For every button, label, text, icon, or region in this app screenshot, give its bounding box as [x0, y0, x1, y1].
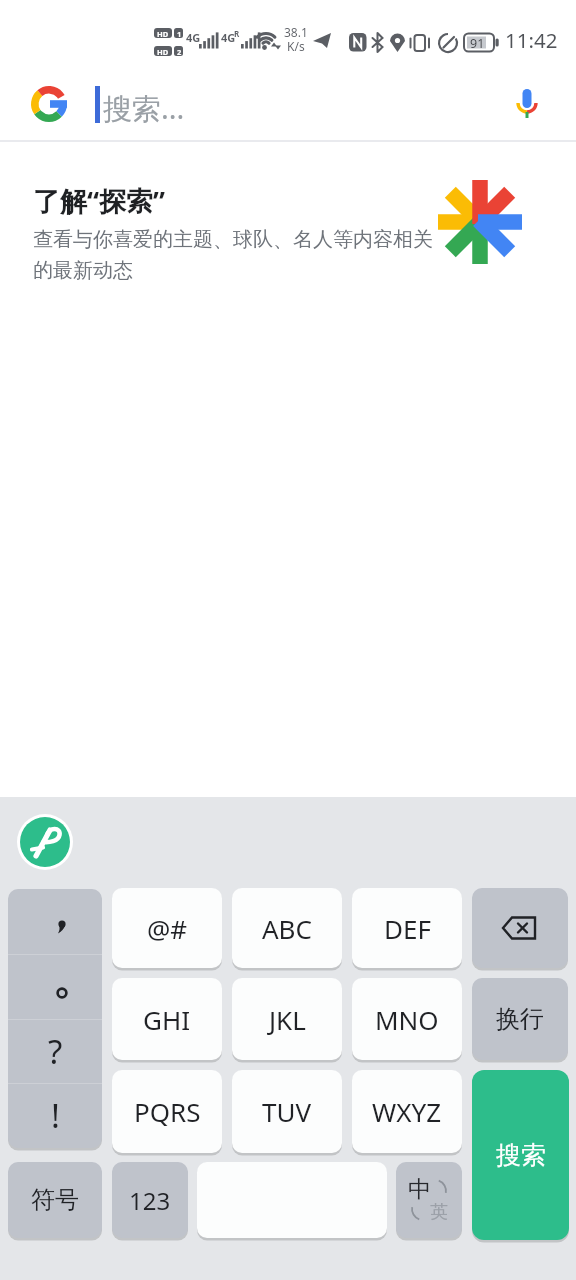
- staticText: 换行: [496, 1004, 544, 1034]
- staticText: 搜索...: [103, 88, 185, 128]
- staticText: 123: [129, 1184, 171, 1217]
- staticText: 英: [430, 1201, 448, 1224]
- button[interactable]: 换行: [472, 978, 568, 1060]
- staticText: K/s: [287, 38, 305, 54]
- button[interactable]: @#: [112, 888, 222, 968]
- button[interactable]: [8, 889, 102, 954]
- button[interactable]: PQRS: [112, 1070, 222, 1153]
- staticText: @#: [147, 911, 188, 946]
- staticText: ?: [48, 1029, 63, 1074]
- button[interactable]: WXYZ: [352, 1070, 462, 1153]
- button[interactable]: ?: [8, 1019, 102, 1084]
- button[interactable]: 了解“探索”: [0, 142, 576, 302]
- staticText: R: [234, 28, 240, 39]
- button[interactable]: 123: [112, 1162, 188, 1238]
- staticText: 4G: [221, 30, 236, 45]
- staticText: 查看与你喜爱的主题、球队、名人等内容相关 的最新动态: [33, 227, 433, 283]
- button[interactable]: [31, 86, 67, 122]
- staticText: GHI: [143, 1002, 191, 1037]
- button[interactable]: [512, 84, 542, 120]
- button[interactable]: ABC: [232, 888, 342, 968]
- button[interactable]: !: [8, 1083, 102, 1148]
- staticText: 了解“探索”: [33, 182, 166, 219]
- staticText: 符号: [31, 1185, 79, 1215]
- button[interactable]: GHI: [112, 978, 222, 1060]
- button[interactable]: 搜索: [472, 1070, 569, 1240]
- staticText: MNO: [375, 1002, 439, 1037]
- button[interactable]: [472, 888, 568, 968]
- button[interactable]: TUV: [232, 1070, 342, 1153]
- staticText: 11:42: [505, 26, 558, 54]
- staticText: HD: [157, 29, 169, 39]
- button[interactable]: JKL: [232, 978, 342, 1060]
- button[interactable]: MNO: [352, 978, 462, 1060]
- staticText: TUV: [262, 1094, 312, 1129]
- staticText: ABC: [262, 911, 312, 946]
- staticText: HD: [157, 47, 169, 57]
- staticText: JKL: [269, 1002, 306, 1037]
- button[interactable]: 中: [396, 1162, 462, 1238]
- button[interactable]: 符号: [8, 1162, 102, 1238]
- staticText: 搜索: [496, 1140, 546, 1171]
- staticText: WXYZ: [372, 1094, 442, 1129]
- staticText: 91: [470, 35, 485, 52]
- button[interactable]: DEF: [352, 888, 462, 968]
- staticText: PQRS: [134, 1094, 201, 1129]
- staticText: 中: [408, 1175, 431, 1204]
- staticText: 2: [177, 47, 182, 57]
- staticText: 38.1: [284, 24, 308, 40]
- staticText: DEF: [384, 911, 431, 946]
- button[interactable]: [17, 814, 73, 870]
- staticText: 4G: [186, 30, 201, 45]
- staticText: !: [51, 1093, 60, 1138]
- staticText: 1: [177, 29, 182, 39]
- button[interactable]: [8, 954, 102, 1019]
